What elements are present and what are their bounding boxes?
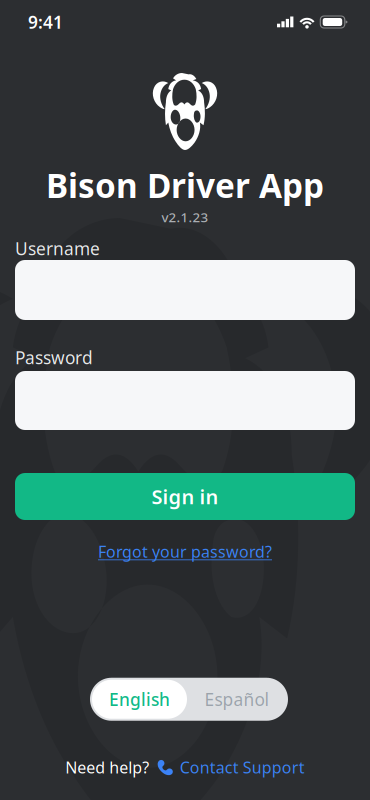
- button[interactable]: English: [92, 680, 187, 719]
- button[interactable]: Sign in: [15, 473, 355, 520]
- staticText: English: [109, 688, 170, 711]
- staticText: Contact Support: [180, 757, 305, 778]
- staticText: Username: [15, 237, 100, 260]
- staticText: Password: [15, 346, 93, 369]
- staticText: Bison Driver App: [46, 163, 324, 207]
- staticText: Sign in: [151, 483, 218, 510]
- staticText: Español: [204, 688, 268, 711]
- staticText: 9:41: [28, 10, 63, 33]
- button[interactable]: Español: [187, 680, 286, 719]
- button[interactable]: Contact Support: [157, 757, 305, 778]
- staticText: Forgot your password?: [98, 541, 272, 562]
- button[interactable]: Forgot your password?: [88, 535, 282, 568]
- staticText: Need help?: [65, 757, 149, 778]
- staticText: v2.1.23: [161, 208, 208, 226]
